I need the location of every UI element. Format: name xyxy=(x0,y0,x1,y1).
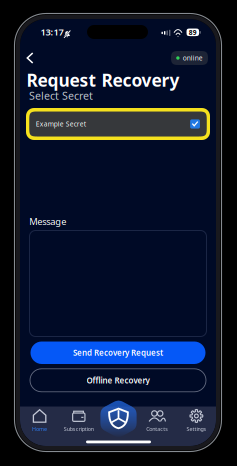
staticText: Select Secret xyxy=(29,88,93,103)
button[interactable]: Contacts xyxy=(138,407,177,435)
staticText: Offline Recovery xyxy=(86,375,149,386)
staticText: Subscription xyxy=(64,425,94,433)
staticText: Contacts xyxy=(146,425,168,433)
staticText: 89 xyxy=(189,28,197,37)
button[interactable]: online xyxy=(171,51,208,65)
button[interactable]: Recover xyxy=(100,399,136,438)
button[interactable]: Example Secret xyxy=(26,108,210,140)
button[interactable]: Send Recovery Request xyxy=(30,341,205,364)
staticText: 13:17 xyxy=(40,26,63,38)
button[interactable]: Back xyxy=(20,48,40,68)
button[interactable]: Settings xyxy=(177,407,216,435)
button[interactable]: Home xyxy=(20,407,59,435)
staticText: Request Recovery xyxy=(26,68,179,91)
button[interactable]: Subscription xyxy=(59,407,98,435)
staticText: Send Recovery Request xyxy=(73,347,163,358)
staticText: Home xyxy=(32,425,47,433)
staticText: Settings xyxy=(186,425,206,433)
button[interactable]: Offline Recovery xyxy=(30,369,206,392)
staticText: online xyxy=(183,54,203,62)
staticText: Message xyxy=(29,215,66,228)
staticText: Example Secret xyxy=(36,120,86,128)
